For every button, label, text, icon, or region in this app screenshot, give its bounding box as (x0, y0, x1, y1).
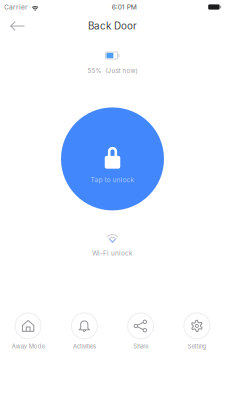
staticText: Carrier (4, 3, 28, 11)
button[interactable]: Away Mode (0, 313, 56, 350)
staticText: Activities (73, 343, 96, 350)
button[interactable]: Tap to unlock (61, 107, 164, 210)
button[interactable]: Share (112, 313, 169, 350)
staticText: Tap to unlock (90, 176, 134, 184)
staticText: Away Mode (12, 343, 45, 350)
staticText: 55% (Just now) (87, 67, 137, 74)
button[interactable]: Setting (169, 313, 225, 350)
button[interactable]: Wi-Fi unlock (92, 231, 133, 257)
staticText: Back Door (88, 20, 137, 32)
staticText: Wi-Fi unlock (92, 249, 133, 257)
button[interactable]: Back (0, 15, 33, 37)
staticText: 6:01 PM (112, 3, 137, 11)
staticText: Setting (187, 343, 206, 350)
staticText: Share (133, 343, 148, 350)
button[interactable]: Activities (56, 313, 112, 350)
